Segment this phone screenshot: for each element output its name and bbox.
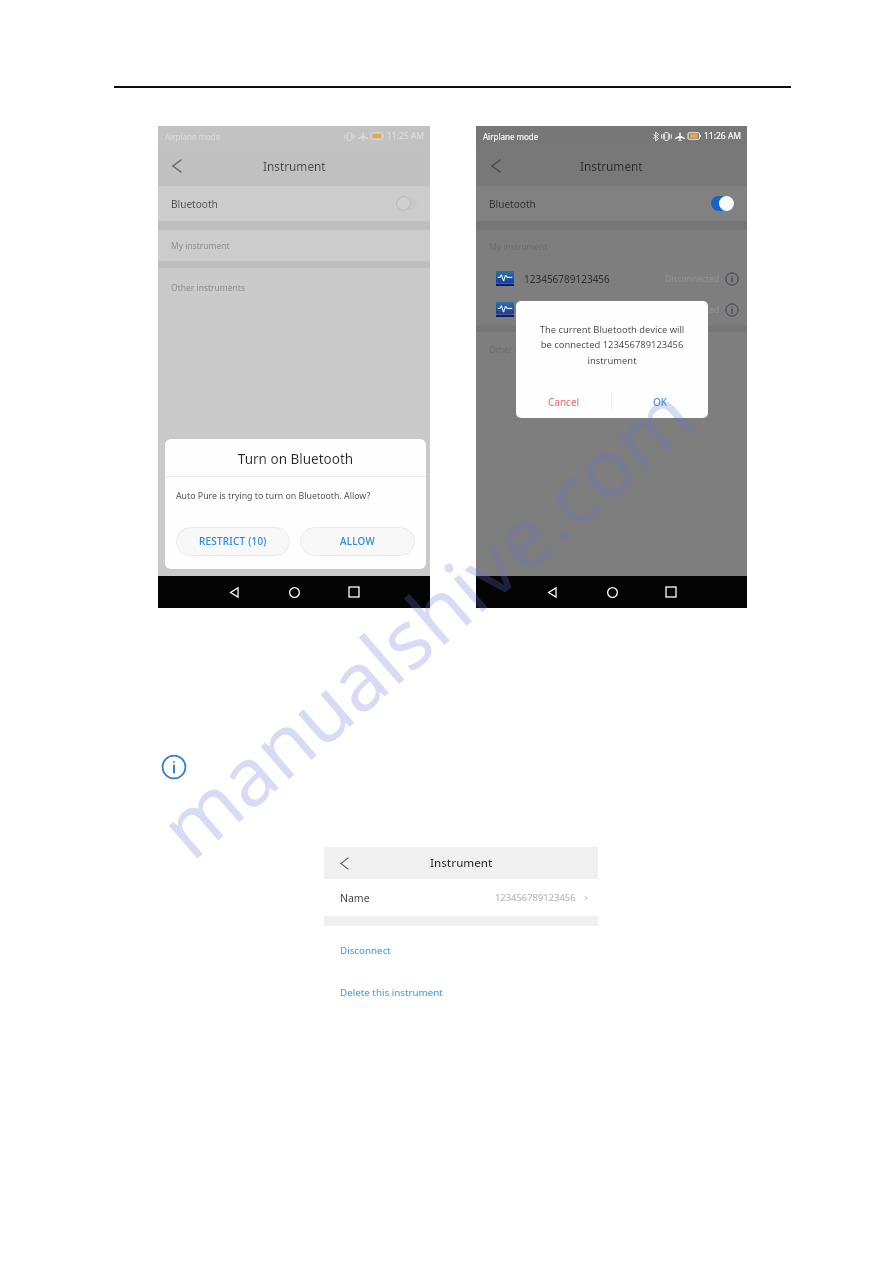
button[interactable]: Back (226, 584, 242, 600)
staticText: 11:25 AM (387, 130, 425, 142)
button[interactable]: 123456789123456 (476, 263, 747, 294)
button[interactable]: Back (484, 154, 508, 178)
staticText: The current Bluetooth device will be con… (519, 323, 705, 367)
button[interactable]: Recent apps (663, 584, 679, 600)
staticText: OK (653, 395, 667, 409)
staticText: Disconnect (340, 944, 391, 957)
button[interactable]: Device information (724, 302, 739, 317)
button[interactable]: Information (160, 753, 188, 781)
button[interactable]: Home (604, 584, 620, 600)
staticText: Other instruments (489, 344, 563, 356)
button[interactable]: RESTRICT (10) (176, 527, 290, 556)
button[interactable]: Back (334, 853, 354, 873)
staticText: Other instruments (171, 282, 245, 294)
staticText: Turn on Bluetooth (165, 450, 426, 468)
staticText: Airplane mode (165, 131, 221, 142)
staticText: Cancel (548, 395, 580, 409)
button[interactable]: Cancel (516, 389, 611, 415)
button[interactable]: Disconnect (324, 935, 598, 965)
staticText: Instrument (430, 855, 493, 871)
staticText: 11:26 AM (704, 130, 742, 142)
staticText: 123456789123456 (524, 272, 610, 286)
staticText: Name (340, 891, 370, 905)
button[interactable]: Recent apps (346, 584, 362, 600)
button[interactable]: OK (612, 389, 708, 415)
staticText: Auto Pure is trying to turn on Bluetooth… (176, 490, 371, 502)
button[interactable]: Back (544, 584, 560, 600)
staticText: Instrument (263, 158, 326, 174)
staticText: RESTRICT (10) (199, 535, 267, 548)
button[interactable]: Device information (724, 271, 739, 286)
button[interactable]: Delete this instrument (324, 977, 598, 1007)
staticText: Delete this instrument (340, 986, 443, 999)
staticText: My instrument (489, 241, 548, 253)
staticText: Instrument (580, 158, 643, 174)
staticText: Bluetooth (171, 197, 218, 211)
staticText: 123456789123456 (495, 891, 576, 904)
staticText: My instrument (171, 240, 230, 252)
staticText: manualshive.com (131, 356, 712, 877)
button[interactable]: Name (324, 879, 598, 916)
staticText: Bluetooth (489, 197, 536, 211)
staticText: Disconnected (665, 304, 720, 316)
button[interactable]: Bluetooth (158, 186, 430, 221)
button[interactable]: Bluetooth (476, 186, 747, 221)
button[interactable]: Back (166, 155, 188, 177)
staticText: Disconnected (665, 273, 720, 285)
staticText: Airplane mode (483, 131, 539, 142)
button[interactable]: ALLOW (300, 527, 415, 556)
staticText: ALLOW (340, 535, 375, 548)
button[interactable]: Home (286, 584, 302, 600)
button[interactable]: 123456789123456 (476, 294, 747, 325)
